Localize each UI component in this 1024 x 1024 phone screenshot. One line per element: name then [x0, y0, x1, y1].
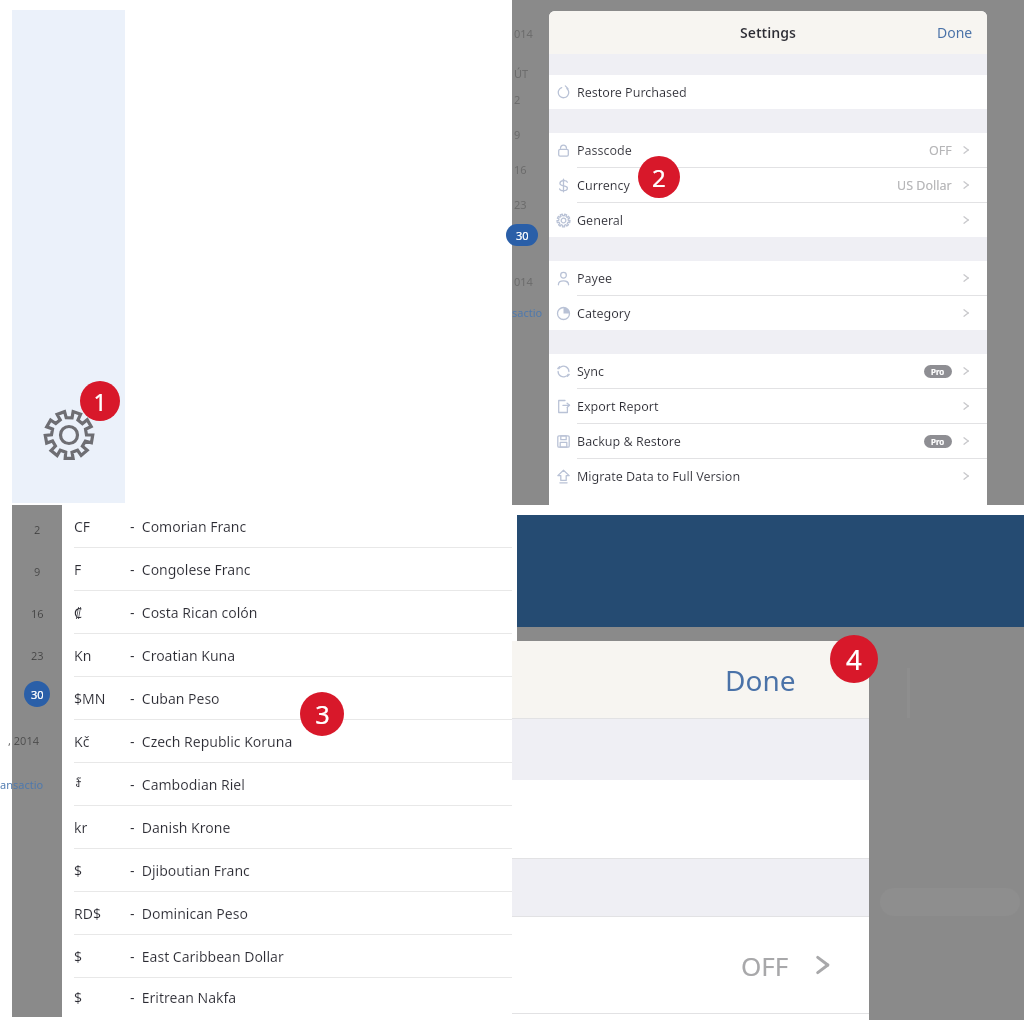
staticText: sactio	[512, 305, 543, 320]
staticText: - Croatian Kuna	[130, 646, 236, 665]
staticText: $	[74, 947, 83, 966]
button[interactable]: Category	[549, 296, 987, 330]
staticText: OFF	[741, 948, 789, 983]
button[interactable]: Done	[929, 17, 981, 48]
staticText: OFF	[929, 142, 952, 159]
button[interactable]: $	[62, 978, 512, 1017]
staticText: Category	[577, 305, 631, 322]
staticText: - Cambodian Riel	[130, 775, 245, 794]
staticText: 3	[315, 697, 330, 731]
button[interactable]: Export Report	[549, 389, 987, 423]
staticText: Restore Purchased	[577, 84, 687, 101]
staticText: Migrate Data to Full Version	[577, 468, 741, 485]
staticText: - Costa Rican colón	[130, 603, 258, 622]
staticText: 9	[514, 127, 521, 142]
staticText: - Danish Krone	[130, 818, 231, 837]
staticText: Done	[937, 23, 973, 42]
staticText: $	[74, 861, 83, 880]
staticText: 71	[978, 330, 989, 342]
staticText: kr	[74, 818, 88, 837]
staticText: Pro	[931, 436, 945, 447]
button[interactable]: Settings	[44, 410, 94, 460]
staticText: ₡	[74, 603, 83, 622]
staticText: 30	[31, 687, 44, 702]
staticText: 014	[514, 26, 533, 41]
staticText: 23	[31, 648, 44, 663]
button[interactable]: kr	[62, 806, 512, 848]
staticText: - Comorian Franc	[130, 517, 247, 536]
staticText: 9	[34, 564, 41, 579]
staticText: F	[74, 560, 82, 579]
button[interactable]: $MN	[62, 677, 512, 719]
staticText: CF	[74, 517, 91, 536]
staticText: - Cuban Peso	[130, 689, 220, 708]
staticText: - Djiboutian Franc	[130, 861, 250, 880]
staticText: - Congolese Franc	[130, 560, 251, 579]
staticText: Passcode	[577, 142, 632, 159]
staticText: General	[577, 212, 624, 229]
button[interactable]: $	[62, 935, 512, 977]
staticText: - Czech Republic Koruna	[130, 732, 293, 751]
staticText: 014	[514, 274, 533, 289]
staticText: Settings	[740, 23, 796, 42]
staticText: Pro	[931, 366, 945, 377]
button[interactable]: Payee	[549, 261, 987, 295]
staticText: ÚT	[514, 66, 529, 81]
staticText: ansactio	[0, 777, 44, 792]
staticText: 4	[846, 640, 862, 678]
button[interactable]: Sync	[549, 354, 987, 388]
staticText: Sync	[577, 363, 604, 380]
staticText: Export Report	[577, 398, 659, 415]
button[interactable]: Done	[715, 653, 806, 707]
staticText: $MN	[74, 689, 106, 708]
button[interactable]: Backup & Restore	[549, 424, 987, 458]
button[interactable]: Passcode	[549, 133, 987, 167]
staticText: 23	[514, 197, 527, 212]
button[interactable]: CF	[62, 505, 512, 547]
button[interactable]: Currency	[549, 168, 987, 202]
staticText: 2	[652, 161, 666, 194]
staticText: 16	[31, 606, 44, 621]
staticText: ៛	[74, 775, 83, 793]
staticText: 30	[516, 228, 529, 243]
staticText: Kč	[74, 732, 90, 751]
button[interactable]: F	[62, 548, 512, 590]
staticText: Done	[725, 661, 796, 699]
staticText: US Dollar	[897, 177, 952, 194]
staticText: 2	[514, 92, 521, 107]
button[interactable]: Kč	[62, 720, 512, 762]
staticText: - East Caribbean Dollar	[130, 947, 284, 966]
button[interactable]: $	[62, 849, 512, 891]
staticText: $	[74, 988, 83, 1007]
button[interactable]: RD$	[62, 892, 512, 934]
staticText: Backup & Restore	[577, 433, 681, 450]
staticText: 1	[93, 386, 107, 417]
staticText: 16	[514, 162, 527, 177]
staticText: , 2014	[8, 733, 39, 748]
staticText: Payee	[577, 270, 613, 287]
staticText: - Dominican Peso	[130, 904, 248, 923]
button[interactable]: ៛	[62, 763, 512, 805]
staticText: RD$	[74, 904, 101, 923]
button[interactable]: Kn	[62, 634, 512, 676]
staticText: Kn	[74, 646, 92, 665]
button[interactable]: General	[549, 203, 987, 237]
button[interactable]: Migrate Data to Full Version	[549, 459, 987, 493]
button[interactable]: OFF	[512, 917, 869, 1013]
button[interactable]: ₡	[62, 591, 512, 633]
staticText: - Eritrean Nakfa	[130, 988, 237, 1007]
staticText: ds	[975, 452, 988, 467]
staticText: 2	[34, 522, 41, 537]
staticText: Currency	[577, 177, 630, 194]
button[interactable]: Restore Purchased	[549, 75, 987, 109]
